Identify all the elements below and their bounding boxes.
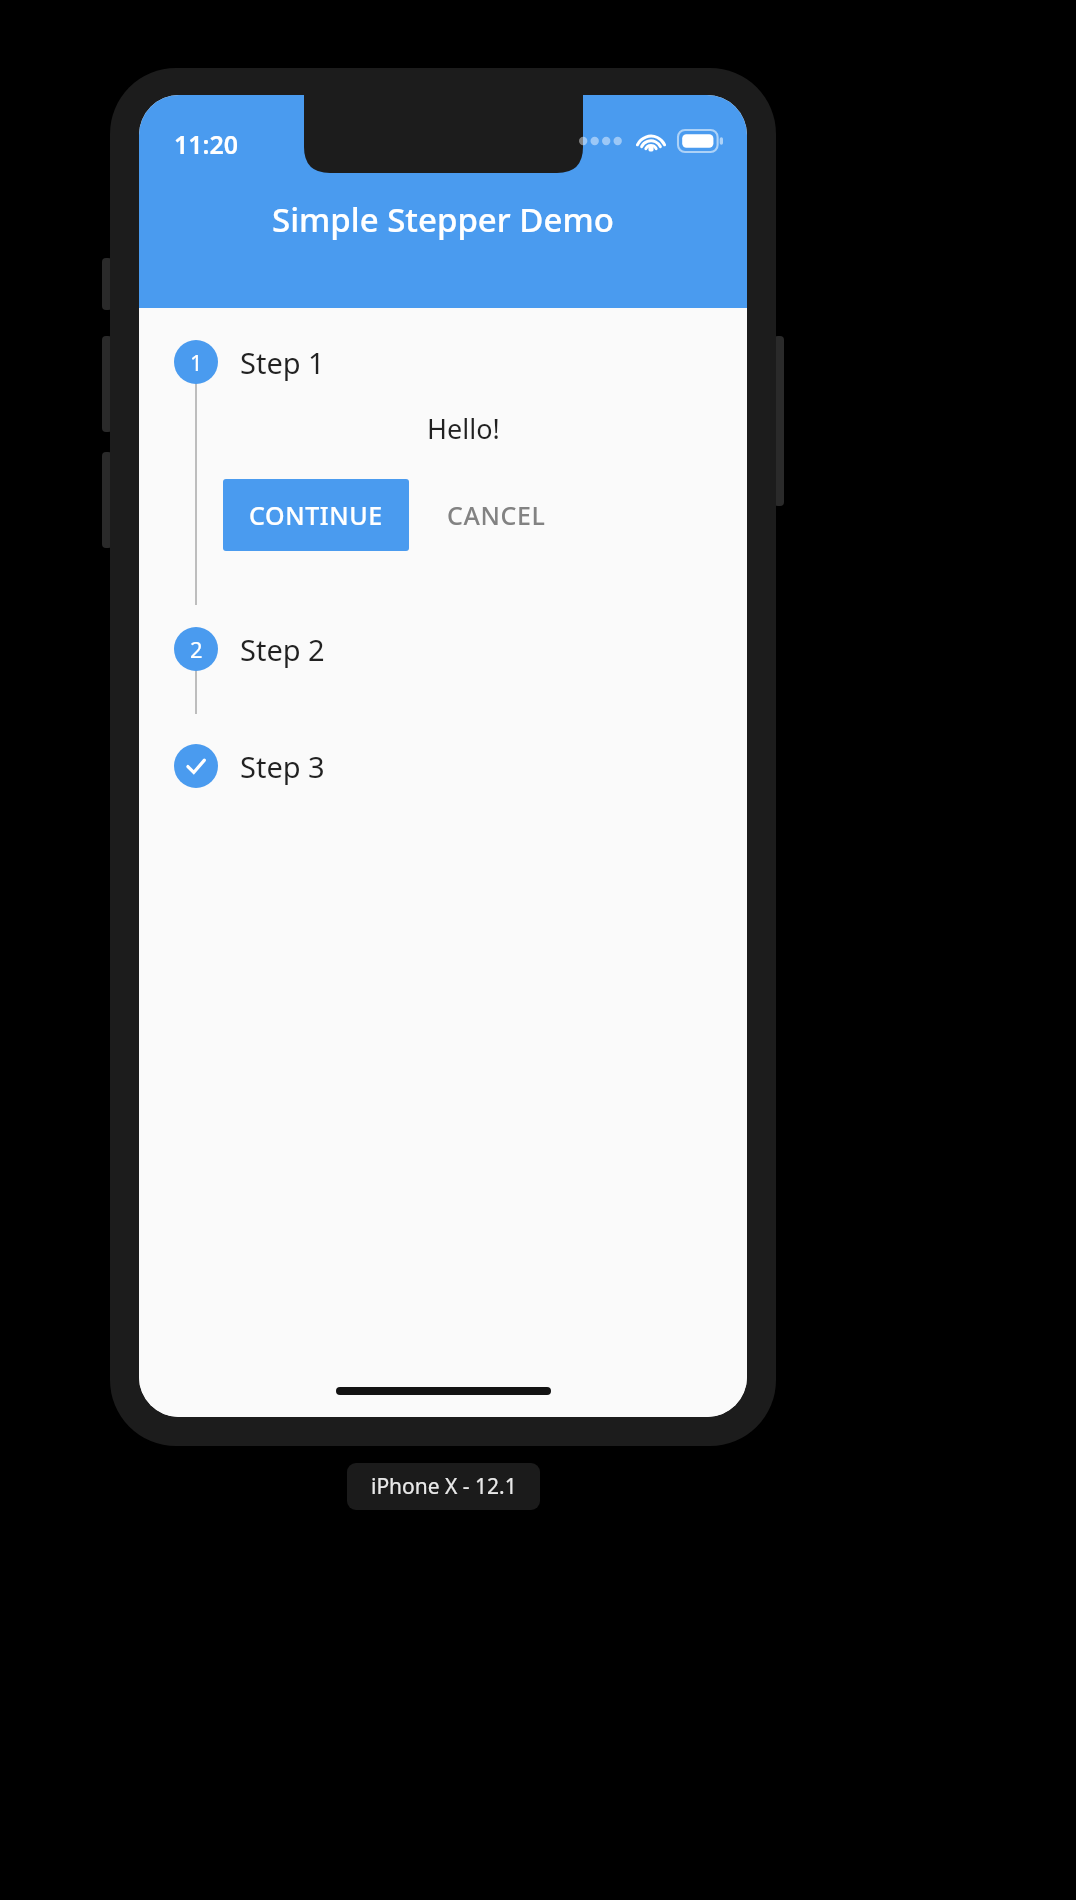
button[interactable]: iPhone X - 12.1 (347, 1463, 540, 1510)
staticText: CONTINUE (249, 498, 383, 532)
staticText: 1 (190, 347, 203, 377)
staticText: Simple Stepper Demo (272, 197, 614, 242)
button[interactable]: CONTINUE (223, 479, 409, 551)
staticText: 11:20 (174, 127, 239, 161)
staticText: Hello! (427, 410, 500, 447)
staticText: CANCEL (447, 498, 546, 532)
staticText: 2 (190, 634, 203, 664)
staticText: Step 1 (240, 343, 325, 382)
button[interactable]: 1 (139, 314, 747, 410)
staticText: Step 3 (240, 747, 325, 786)
staticText: iPhone X - 12.1 (371, 1472, 517, 1501)
button[interactable]: CANCEL (421, 479, 572, 551)
button[interactable]: 2 (139, 601, 747, 697)
staticText: Step 2 (240, 630, 325, 669)
button[interactable]: Step 3 (139, 718, 747, 814)
